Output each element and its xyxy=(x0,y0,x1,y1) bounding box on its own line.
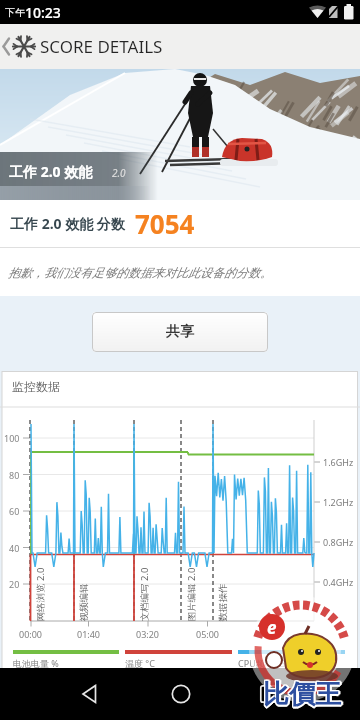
button[interactable] xyxy=(245,668,293,720)
staticText: 电池电量 % xyxy=(13,657,59,669)
staticText: 2.0 xyxy=(112,166,126,180)
staticText: 视频编辑 xyxy=(77,583,88,621)
staticText: 05:00 xyxy=(196,628,220,640)
button[interactable] xyxy=(157,668,205,720)
staticText: 40 xyxy=(9,542,20,554)
staticText: e xyxy=(267,616,277,639)
staticText: 工作 2.0 效能 分数 xyxy=(10,214,125,233)
staticText: 比價王 xyxy=(263,678,341,711)
staticText: 比價王 xyxy=(263,680,341,713)
button[interactable]: 共享 xyxy=(92,312,268,352)
staticText: 60 xyxy=(9,505,20,517)
staticText: 比價王 xyxy=(262,679,340,712)
staticText: 100 xyxy=(4,432,20,444)
staticText: 共享 xyxy=(166,323,194,341)
staticText: 图片编辑 2.0 xyxy=(184,567,195,621)
staticText: 1.6GHz xyxy=(323,456,354,468)
staticText: 0.4GHz xyxy=(323,576,354,588)
staticText: 1.2GHz xyxy=(323,496,354,508)
staticText: 下午 xyxy=(5,6,25,19)
staticText: 80 xyxy=(9,469,20,481)
staticText: 温度 °C xyxy=(125,657,155,669)
staticText: 比價王 xyxy=(262,678,340,711)
staticText: 比價王 xyxy=(265,678,343,711)
staticText: 03:20 xyxy=(136,628,160,640)
staticText: 7054 xyxy=(135,206,195,241)
staticText: 00:00 xyxy=(19,628,43,640)
staticText: 比價王 xyxy=(264,677,342,710)
staticText: 文档编写 2.0 xyxy=(137,567,148,621)
button[interactable]: SCORE DETAILS xyxy=(0,24,360,69)
staticText: 20 xyxy=(9,578,20,590)
button[interactable] xyxy=(66,668,114,720)
staticText: 01:40 xyxy=(77,628,101,640)
staticText: 网络浏览 2.0 xyxy=(33,567,44,621)
staticText: 比價王 xyxy=(262,677,340,710)
staticText: SCORE DETAILS xyxy=(40,35,163,58)
staticText: 10:23 xyxy=(25,3,61,22)
staticText: 比價王 xyxy=(264,679,342,712)
staticText: 抱歉，我们没有足够的数据来对比此设备的分数。 xyxy=(8,265,272,280)
staticText: 工作 2.0 效能 xyxy=(9,162,93,181)
staticText: CPU频率 (GHz) xyxy=(238,657,299,669)
staticText: 监控数据 xyxy=(12,379,60,394)
staticText: 数据操作 xyxy=(216,583,227,621)
staticText: 0.8GHz xyxy=(323,536,354,548)
staticText: 比價王 xyxy=(263,677,341,710)
